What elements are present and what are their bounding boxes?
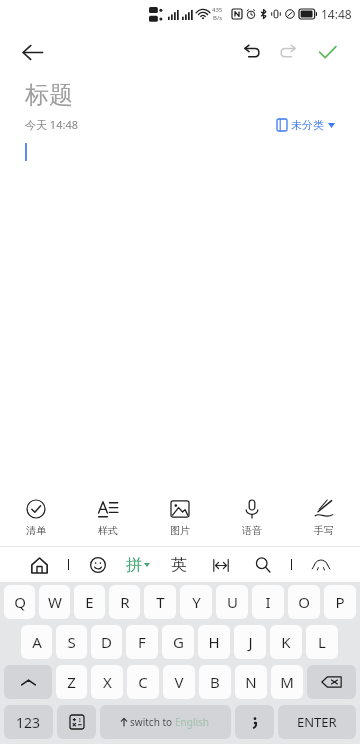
staticText: E (85, 592, 94, 612)
button[interactable]: Y (180, 585, 212, 619)
staticText: R (120, 592, 130, 612)
staticText: P (335, 592, 345, 612)
staticText: K (281, 632, 291, 652)
staticText: 今天 14:48 (25, 117, 78, 132)
staticText: 清单 (26, 524, 46, 537)
button[interactable]: U (216, 585, 248, 619)
staticText: W (48, 592, 62, 612)
staticText: M (280, 672, 294, 692)
button[interactable]: K (270, 625, 302, 659)
staticText: 标题 (25, 80, 73, 110)
button[interactable]: 英 (166, 552, 192, 578)
staticText: A (32, 632, 42, 652)
staticText: ENTER (297, 713, 337, 731)
button[interactable]: G (162, 625, 194, 659)
button[interactable]: Backspace (307, 665, 356, 699)
button[interactable]: Emoji (85, 552, 111, 578)
staticText: D (101, 632, 112, 652)
button[interactable]: X (91, 665, 123, 699)
staticText: 样式 (98, 524, 118, 537)
button[interactable]: 未分类 (277, 118, 335, 132)
button[interactable]: N (235, 665, 267, 699)
button[interactable]: Back (10, 30, 54, 74)
staticText: 未分类 (291, 118, 324, 132)
staticText: S (67, 632, 76, 652)
staticText: T (156, 592, 165, 612)
staticText: U (227, 592, 238, 612)
button[interactable]: Redo (270, 33, 308, 71)
button[interactable]: 图片 (144, 490, 216, 546)
button[interactable]: Undo (232, 33, 270, 71)
button[interactable]: 语音 (216, 490, 288, 546)
button[interactable]: Keyboard width (208, 552, 234, 578)
staticText: F (138, 632, 146, 652)
staticText: 图片 (170, 524, 190, 537)
staticText: 英 (171, 555, 187, 575)
button[interactable]: H (198, 625, 230, 659)
button[interactable]: Shift (4, 665, 52, 699)
staticText: G (173, 632, 184, 652)
staticText: C (138, 672, 148, 692)
button[interactable]: Space (100, 705, 231, 739)
staticText: H (208, 632, 220, 652)
button[interactable]: 清单 (0, 490, 72, 546)
button[interactable]: ENTER (278, 705, 356, 739)
staticText: V (174, 672, 184, 692)
button[interactable]: 手写 (288, 490, 360, 546)
button[interactable]: Q (4, 585, 35, 619)
button[interactable]: L (306, 625, 338, 659)
button[interactable]: 样式 (72, 490, 144, 546)
button[interactable]: Done (308, 33, 346, 71)
staticText: switch to (130, 715, 175, 729)
button[interactable]: 123 (4, 705, 53, 739)
staticText: Y (192, 592, 201, 612)
staticText: I (265, 592, 271, 612)
button[interactable]: Hide keyboard (308, 552, 334, 578)
staticText: Z (67, 672, 76, 692)
button[interactable]: Punctuation (235, 705, 274, 739)
button[interactable]: D (91, 625, 122, 659)
button[interactable]: 拼 (126, 555, 150, 575)
button[interactable]: Z (56, 665, 87, 699)
button[interactable]: S (56, 625, 87, 659)
staticText: J (248, 632, 253, 652)
button[interactable]: F (126, 625, 158, 659)
button[interactable]: O (288, 585, 320, 619)
staticText: 手写 (314, 524, 334, 537)
button[interactable]: A (21, 625, 52, 659)
button[interactable]: M (271, 665, 303, 699)
button[interactable]: I (252, 585, 284, 619)
button[interactable]: R (109, 585, 140, 619)
staticText: L (318, 632, 326, 652)
button[interactable]: J (234, 625, 266, 659)
staticText: X (103, 672, 112, 692)
button[interactable]: Home (26, 552, 52, 578)
staticText: English (175, 715, 210, 729)
staticText: B/s (213, 14, 223, 22)
staticText: Q (14, 592, 26, 612)
staticText: 435 (212, 6, 223, 14)
staticText: B (210, 672, 220, 692)
button[interactable]: E (74, 585, 105, 619)
button[interactable]: W (39, 585, 70, 619)
button[interactable]: T (144, 585, 176, 619)
staticText: O (298, 592, 310, 612)
button[interactable]: C (127, 665, 159, 699)
staticText: N (245, 672, 257, 692)
staticText: 语音 (242, 524, 262, 537)
button[interactable]: V (163, 665, 195, 699)
button[interactable]: Search (250, 552, 276, 578)
staticText: 123 (16, 713, 41, 732)
button[interactable]: B (199, 665, 231, 699)
staticText: 14:48 (321, 6, 352, 22)
staticText: 拼 (126, 555, 142, 575)
button[interactable]: Symbols (57, 705, 96, 739)
button[interactable]: P (324, 585, 356, 619)
